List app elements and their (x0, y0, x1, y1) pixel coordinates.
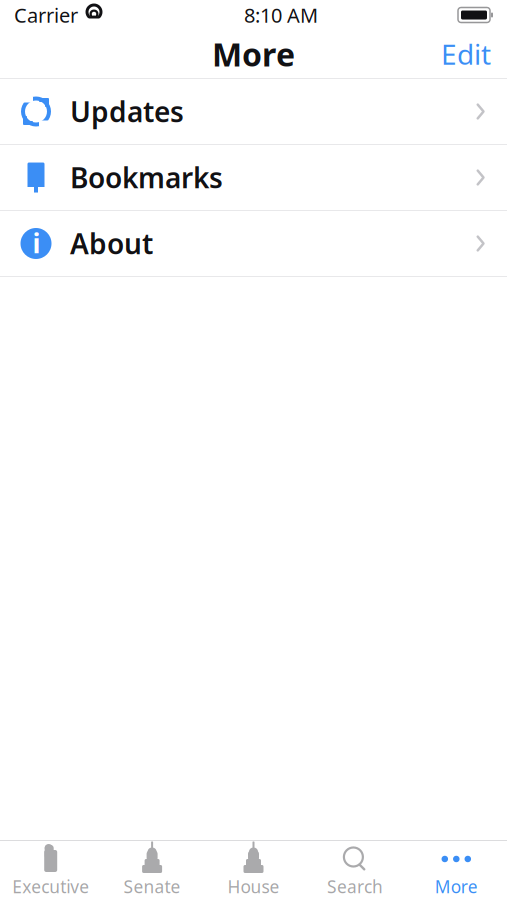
staticText: Carrier (14, 2, 78, 28)
button[interactable]: House (203, 839, 304, 900)
button[interactable]: More (406, 839, 507, 900)
button[interactable]: Bookmarks (0, 145, 507, 211)
button[interactable]: Executive (0, 839, 101, 900)
staticText: Updates (70, 93, 184, 130)
button[interactable]: Search (304, 839, 406, 900)
staticText: About (70, 225, 153, 262)
staticText: House (227, 875, 279, 898)
staticText: Edit (441, 35, 491, 73)
staticText: Search (327, 875, 383, 898)
staticText: Bookmarks (70, 159, 223, 196)
staticText: Senate (124, 875, 181, 898)
staticText: i (32, 225, 40, 261)
button[interactable]: Updates (0, 79, 507, 145)
button[interactable]: i (0, 211, 507, 277)
staticText: More (212, 33, 295, 75)
button[interactable]: Edit (425, 27, 507, 81)
staticText: Executive (12, 875, 89, 898)
button[interactable]: Senate (101, 839, 203, 900)
staticText: 8:10 AM (244, 2, 318, 28)
staticText: More (435, 875, 478, 898)
